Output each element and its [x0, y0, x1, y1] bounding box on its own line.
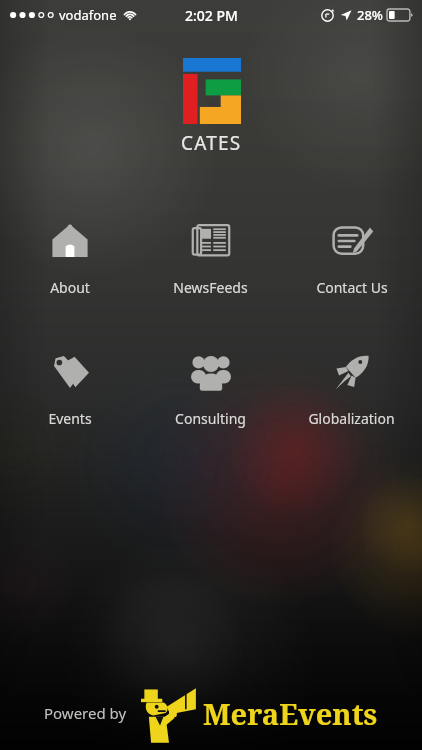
staticText: 28%	[357, 6, 383, 24]
other: MeraEvents logo	[141, 682, 197, 744]
button[interactable]: Events	[0, 345, 140, 432]
staticText: CATES	[181, 130, 242, 156]
staticText: Contact Us	[316, 278, 388, 297]
button[interactable]: Powered by	[0, 682, 422, 744]
staticText: Globalization	[308, 409, 395, 428]
staticText: Events	[48, 409, 92, 428]
button[interactable]: Contact Us	[281, 214, 422, 301]
staticText: NewsFeeds	[173, 278, 248, 297]
button[interactable]: Consulting	[140, 345, 281, 432]
staticText: MeraEvents	[203, 694, 378, 733]
button[interactable]: Globalization	[281, 345, 422, 432]
staticText: Consulting	[175, 409, 246, 428]
staticText: About	[50, 278, 90, 297]
staticText: vodafone	[59, 6, 117, 24]
button[interactable]: About	[0, 214, 140, 301]
staticText: Powered by	[44, 703, 127, 723]
button[interactable]: NewsFeeds	[140, 214, 281, 301]
staticText: 2:02 PM	[185, 6, 238, 25]
